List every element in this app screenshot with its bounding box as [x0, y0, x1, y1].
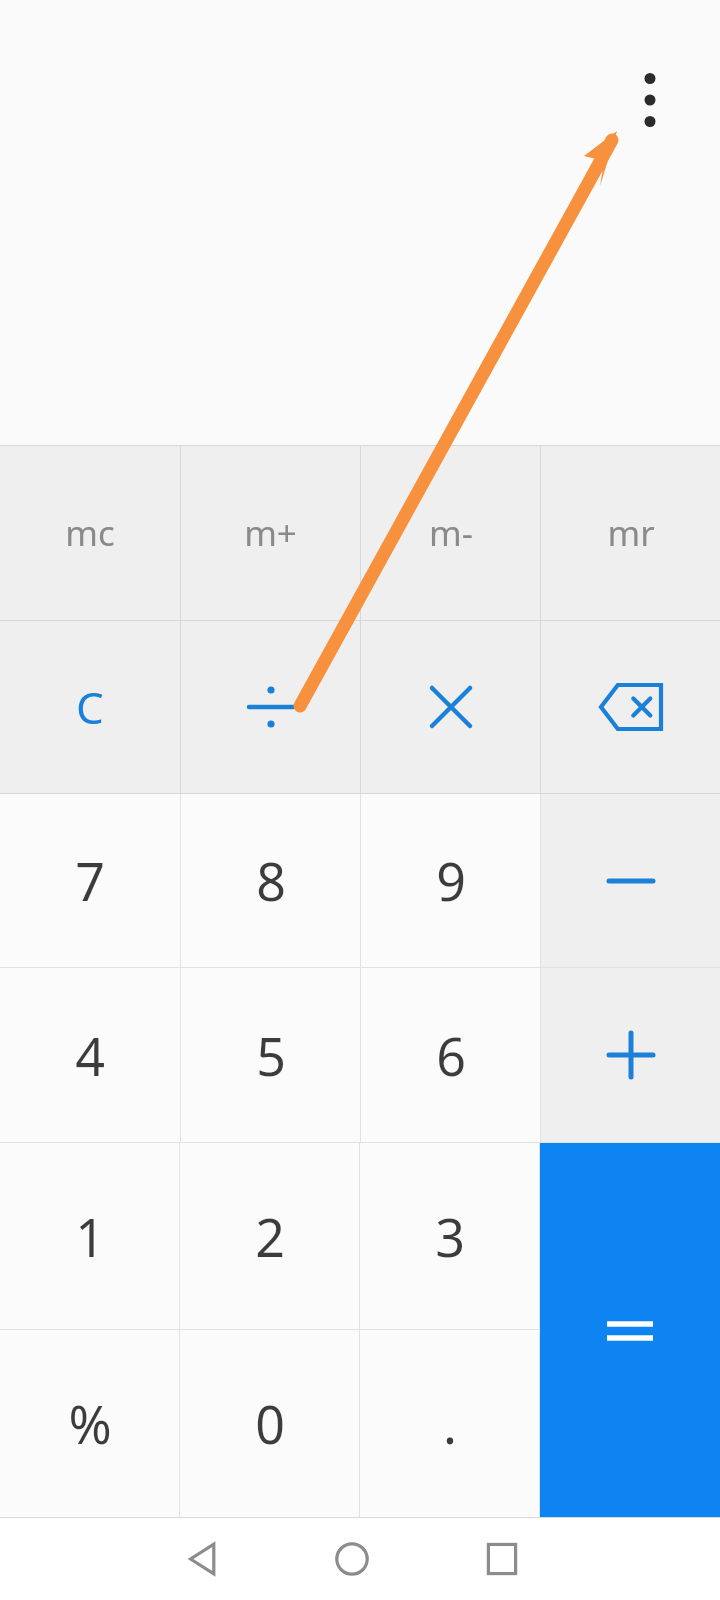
staticText: 2: [255, 1201, 285, 1272]
staticText: .: [443, 1388, 457, 1459]
button[interactable]: Multiply: [361, 621, 540, 793]
staticText: 4: [75, 1020, 105, 1091]
staticText: m+: [244, 509, 297, 557]
button[interactable]: 9: [361, 794, 540, 967]
button[interactable]: 8: [181, 794, 360, 967]
button[interactable]: 1: [0, 1143, 179, 1329]
staticText: 1: [75, 1201, 105, 1272]
button[interactable]: .: [360, 1330, 539, 1517]
button[interactable]: Backspace: [541, 621, 720, 793]
staticText: 7: [75, 845, 105, 916]
staticText: C: [76, 677, 104, 737]
button[interactable]: Recent apps: [466, 1517, 538, 1600]
button[interactable]: 5: [181, 968, 360, 1142]
button[interactable]: Back: [169, 1517, 241, 1600]
button[interactable]: Divide: [181, 621, 360, 793]
button[interactable]: m+: [181, 445, 360, 620]
staticText: 8: [256, 845, 286, 916]
button[interactable]: mr: [541, 445, 720, 620]
button[interactable]: m-: [361, 445, 540, 620]
staticText: m-: [429, 509, 473, 557]
staticText: 6: [436, 1020, 466, 1091]
button[interactable]: Home: [316, 1517, 388, 1600]
staticText: mr: [607, 509, 655, 557]
staticText: mc: [65, 509, 115, 557]
button[interactable]: 7: [0, 794, 180, 967]
staticText: 5: [256, 1020, 286, 1091]
button[interactable]: 6: [361, 968, 540, 1142]
staticText: 9: [436, 845, 466, 916]
button[interactable]: 2: [180, 1143, 359, 1329]
button[interactable]: More options: [614, 62, 686, 138]
button[interactable]: Clear: [0, 621, 180, 793]
staticText: 3: [435, 1201, 465, 1272]
staticText: 0: [255, 1388, 285, 1459]
button[interactable]: Equals: [540, 1143, 720, 1517]
button[interactable]: Minus: [541, 794, 720, 967]
staticText: %: [68, 1388, 112, 1459]
button[interactable]: 3: [360, 1143, 539, 1329]
button[interactable]: 4: [0, 968, 180, 1142]
button[interactable]: mc: [0, 445, 180, 620]
button[interactable]: 0: [180, 1330, 359, 1517]
button[interactable]: %: [0, 1330, 179, 1517]
button[interactable]: Plus: [541, 968, 720, 1142]
